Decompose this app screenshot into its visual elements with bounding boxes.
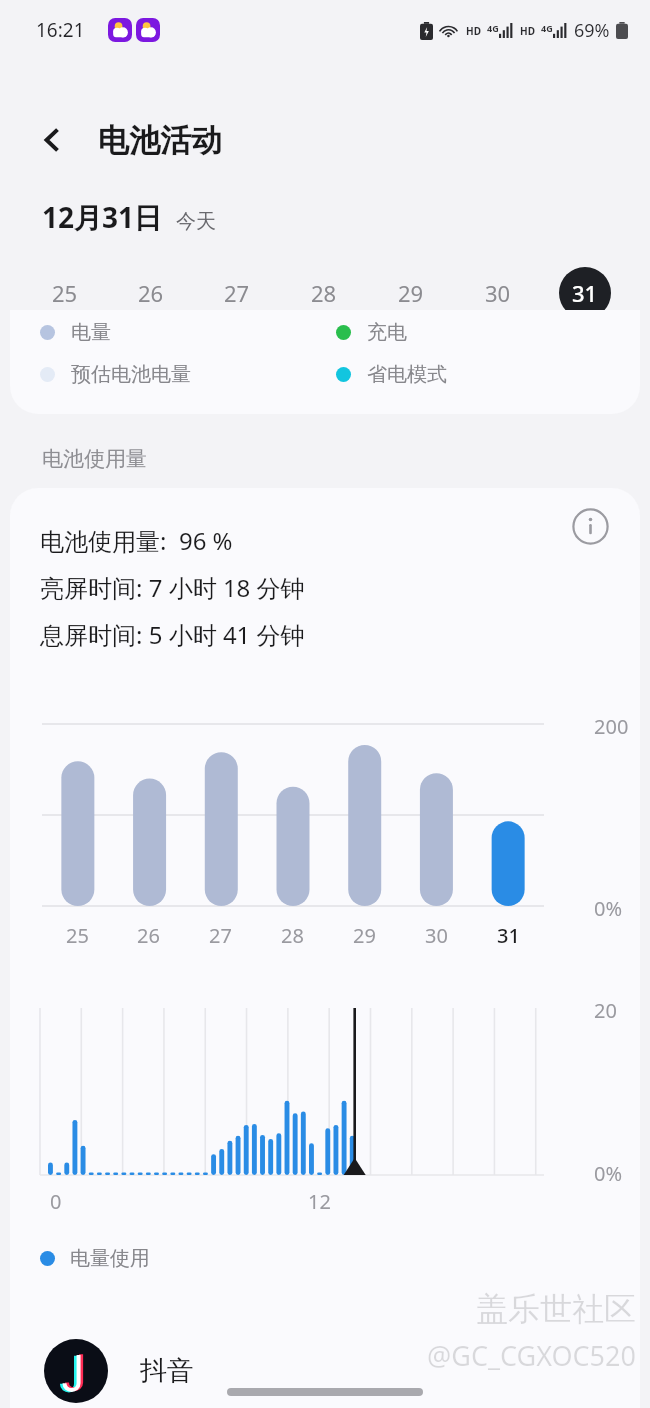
staticText: 息屏时间: 5 小时 41 分钟 (40, 618, 305, 651)
button[interactable]: 25 (22, 264, 108, 322)
button[interactable]: 抖音 (0, 1334, 650, 1408)
staticText: HD (466, 24, 481, 38)
staticText: 抖音 (140, 1354, 194, 1388)
staticText: 31 (497, 922, 520, 949)
button[interactable]: Back (30, 117, 76, 163)
staticText: 0% (594, 1160, 623, 1187)
staticText: 20 (594, 997, 617, 1024)
staticText: 亮屏时间: 7 小时 18 分钟 (40, 571, 305, 604)
button[interactable]: 28 (280, 264, 367, 322)
staticText: 27 (224, 278, 250, 308)
staticText: 0% (594, 895, 623, 922)
staticText: 200 (594, 713, 629, 740)
button[interactable]: 29 (367, 264, 454, 322)
staticText: 电池活动 (98, 121, 222, 160)
button[interactable]: 30 (454, 264, 541, 322)
button[interactable]: 31 (541, 264, 628, 322)
staticText: 电量使用 (70, 1246, 150, 1271)
staticText: 4G (541, 22, 553, 34)
staticText: 69% (574, 18, 610, 43)
staticText: 16:21 (36, 17, 85, 43)
staticText: 25 (66, 922, 89, 949)
staticText: 30 (485, 278, 511, 308)
staticText: 电池使用量: 96 % (40, 524, 233, 557)
staticText: 12月31日 (42, 198, 163, 236)
staticText: 电量 (71, 320, 111, 345)
staticText: HD (520, 24, 535, 38)
staticText: 今天 (176, 209, 216, 234)
staticText: 27 (209, 922, 232, 949)
staticText: 29 (353, 922, 376, 949)
staticText: 29 (398, 278, 424, 308)
staticText: 充电 (367, 320, 407, 345)
staticText: 4G (487, 22, 499, 34)
staticText: @GC_CGXOC520 (427, 1337, 636, 1374)
staticText: 30 (425, 922, 448, 949)
staticText: 26 (138, 278, 164, 308)
button[interactable]: Info (566, 502, 614, 550)
staticText: 0 (50, 1188, 62, 1215)
button[interactable]: 27 (194, 264, 280, 322)
staticText: 12 (308, 1188, 331, 1215)
staticText: 预估电池电量 (71, 362, 191, 387)
staticText: 28 (281, 922, 304, 949)
staticText: 28 (311, 278, 337, 308)
staticText: 电池使用量 (42, 446, 147, 472)
staticText: 31 (572, 278, 598, 308)
staticText: 26 (137, 922, 160, 949)
staticText: 盖乐世社区 (476, 1289, 636, 1329)
button[interactable]: 26 (108, 264, 194, 322)
staticText: 省电模式 (367, 362, 447, 387)
staticText: 25 (52, 278, 78, 308)
